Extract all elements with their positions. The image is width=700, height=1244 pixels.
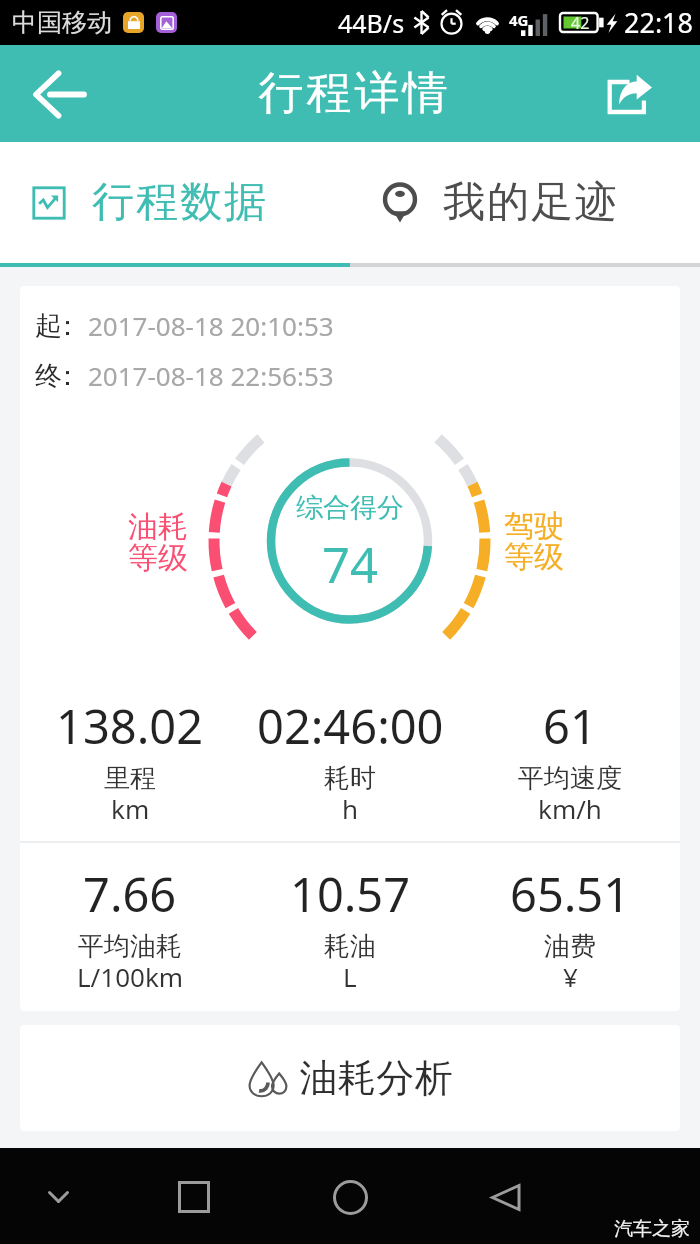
staticText: 终： [39, 359, 77, 393]
staticText: ¥ [563, 959, 578, 994]
staticText: 10.57 [290, 862, 411, 926]
staticText: 平均油耗 [78, 930, 182, 963]
staticText: 61 [543, 694, 597, 758]
staticText: 42 [571, 12, 590, 33]
staticText: 油费 [544, 930, 596, 963]
staticText: 行程数据 [91, 176, 267, 229]
staticText: 138.02 [56, 694, 204, 758]
staticText: 44B/s [338, 6, 405, 40]
staticText: 平均速度 [518, 762, 622, 795]
staticText: km [111, 791, 150, 826]
button[interactable]: 油耗分析 [20, 1025, 680, 1131]
staticText: 4G [509, 10, 529, 30]
staticText: 里程 [104, 762, 156, 795]
staticText: 耗时 [324, 762, 376, 795]
button[interactable]: Back [470, 1162, 540, 1232]
staticText: 2017-08-18 22:56:53 [88, 358, 334, 393]
staticText: 行程详情 [257, 65, 449, 122]
staticText: 74 [322, 531, 379, 598]
button[interactable]: 行程数据 [0, 142, 350, 263]
staticText: 等级 [128, 539, 188, 577]
staticText: 驾驶 [504, 507, 564, 545]
button[interactable]: Back [24, 59, 94, 129]
staticText: 22:18 [624, 4, 694, 41]
staticText: h [342, 791, 359, 826]
staticText: 02:46:00 [257, 694, 444, 758]
staticText: km/h [538, 791, 602, 826]
staticText: 油耗 [128, 508, 188, 546]
staticText: L/100km [77, 959, 184, 994]
staticText: 2017-08-18 20:10:53 [88, 308, 334, 343]
staticText: 65.51 [510, 862, 631, 926]
staticText: 等级 [504, 538, 564, 576]
staticText: 汽车之家 [614, 1217, 690, 1241]
staticText: 中国移动 [12, 7, 112, 38]
staticText: 7.66 [83, 862, 177, 926]
button[interactable]: Home [315, 1162, 385, 1232]
staticText: L [343, 959, 357, 994]
button[interactable]: Hide keyboard [23, 1162, 93, 1232]
staticText: 耗油 [324, 930, 376, 963]
staticText: 我的足迹 [442, 176, 618, 229]
button[interactable]: Recent apps [159, 1162, 229, 1232]
button[interactable]: 我的足迹 [350, 142, 700, 263]
staticText: 起： [39, 309, 77, 343]
staticText: 综合得分 [296, 491, 404, 525]
staticText: 油耗分析 [299, 1054, 453, 1102]
button[interactable]: Share [594, 59, 664, 129]
